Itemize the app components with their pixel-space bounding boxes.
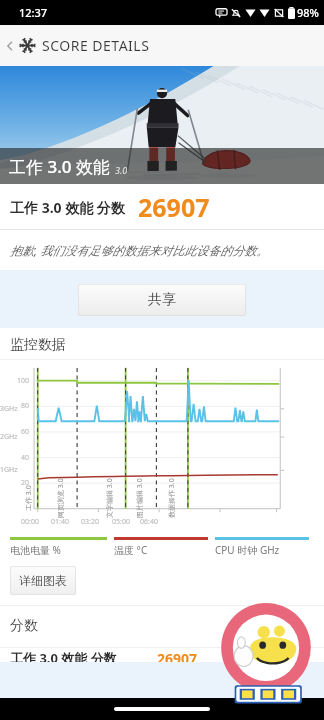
staticText: 12:37: [19, 5, 48, 20]
staticText: 06:40: [140, 517, 158, 527]
staticText: 03:20: [81, 517, 99, 527]
staticText: 3GHz: [0, 404, 18, 414]
staticText: 80: [21, 401, 30, 411]
staticText: 抱歉, 我们没有足够的数据来对比此设备的分数。: [10, 242, 269, 258]
staticText: 监控数据: [10, 336, 66, 354]
staticText: 3.0: [115, 164, 128, 176]
staticText: 1GHz: [0, 465, 18, 475]
button[interactable]: 详细图表: [10, 566, 76, 595]
staticText: 共享: [148, 291, 176, 309]
staticText: 工作 3.0 效能 分数: [10, 649, 117, 662]
staticText: 数据操作 3.0: [167, 478, 177, 518]
staticText: 40: [21, 453, 30, 463]
staticText: 100: [17, 376, 30, 386]
staticText: 文字编辑 3.0: [105, 478, 115, 518]
staticText: 详细图表: [19, 573, 67, 588]
staticText: 工作 3.0 效能 分数: [10, 198, 125, 217]
staticText: CPU 时钟 GHz: [215, 543, 280, 557]
staticText: 26907: [157, 649, 198, 662]
staticText: 00:00: [21, 517, 39, 527]
staticText: 2GHz: [0, 432, 18, 442]
staticText: 05:00: [112, 517, 130, 527]
staticText: 温度 °C: [114, 543, 148, 557]
button[interactable]: 共享: [78, 284, 246, 316]
staticText: SCORE DETAILS: [42, 36, 150, 55]
staticText: 98%: [297, 5, 319, 20]
staticText: 工作 3.0 效能: [9, 155, 110, 178]
staticText: 分数: [10, 617, 38, 635]
staticText: 26907: [138, 190, 210, 224]
staticText: 图片编辑 3.0: [135, 478, 145, 518]
staticText: 01:40: [51, 517, 69, 527]
button[interactable]: Back: [1, 37, 19, 55]
staticText: 20: [21, 478, 30, 488]
staticText: 60: [21, 427, 30, 437]
staticText: 网页浏览 3.0: [56, 478, 66, 518]
staticText: 电池电量 %: [10, 543, 61, 557]
staticText: 工作 3.0: [24, 485, 34, 511]
